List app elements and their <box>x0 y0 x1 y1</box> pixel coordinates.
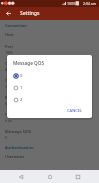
staticText: 30 <box>5 84 10 89</box>
staticText: 60 <box>5 101 10 106</box>
button[interactable]: CANCEL <box>58 106 92 114</box>
staticText: CANCEL <box>67 108 83 112</box>
button[interactable]: Host <box>0 30 99 42</box>
button[interactable]: Back <box>0 7 17 20</box>
staticText: 2 <box>20 97 23 103</box>
staticText: 100% <box>67 1 76 6</box>
staticText: Username <box>5 154 25 159</box>
button[interactable]: Recents <box>71 170 85 183</box>
staticText: Message QOS <box>13 60 44 66</box>
staticText: AndroidClient <box>5 67 28 72</box>
button[interactable]: 0 <box>7 70 92 82</box>
staticText: Client ID <box>5 61 22 66</box>
button[interactable]: Client ID <box>0 59 99 76</box>
staticText: 1 <box>20 85 23 91</box>
button[interactable]: Back <box>14 170 28 183</box>
button[interactable]: Username <box>0 152 99 164</box>
staticText: 0 <box>20 73 23 79</box>
staticText: 0 <box>5 135 8 140</box>
button[interactable]: 2 <box>7 94 92 106</box>
staticText: 1883 <box>5 50 14 55</box>
staticText: Authentication <box>5 145 34 150</box>
staticText: Connection <box>5 23 27 28</box>
staticText: Port <box>5 44 13 49</box>
staticText: Host <box>5 32 14 37</box>
button[interactable]: 1 <box>7 82 92 94</box>
button[interactable]: Port <box>0 42 99 59</box>
staticText: Settings <box>20 10 40 17</box>
staticText: Message QOS <box>5 129 32 134</box>
staticText: true <box>5 118 12 123</box>
button[interactable]: Message QOS <box>0 127 99 144</box>
staticText: Clean session <box>5 112 31 117</box>
button[interactable]: Connection timeout <box>0 76 99 93</box>
staticText: Connection timeout <box>5 78 43 83</box>
button[interactable]: Clean session <box>0 110 99 127</box>
staticText: Keep alive interval <box>5 95 40 100</box>
button[interactable]: Keep alive interval <box>0 93 99 110</box>
button[interactable]: Home <box>43 170 57 183</box>
staticText: 2:04 am <box>83 1 97 6</box>
